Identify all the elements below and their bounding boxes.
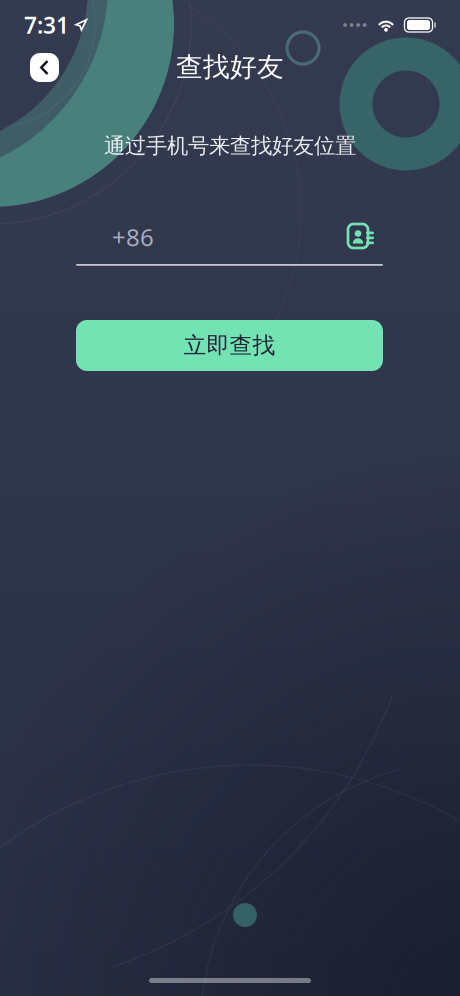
button[interactable]: Choose from contacts [348,224,376,250]
staticText: +86 [112,221,154,253]
button[interactable]: 立即查找 [76,320,383,371]
button[interactable]: Back [30,53,59,82]
staticText: 查找好友 [176,51,284,83]
staticText: 立即查找 [183,332,275,359]
staticText: 通过手机号来查找好友位置 [104,133,356,159]
staticText: 7:31 [24,10,69,40]
